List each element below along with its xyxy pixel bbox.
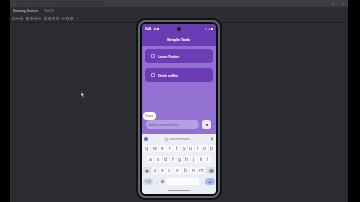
staticText: Paste: [145, 114, 154, 118]
button[interactable]: j: [191, 156, 197, 163]
button[interactable]: Device action 12: [61, 16, 65, 20]
button[interactable]: v: [174, 167, 181, 174]
button[interactable]: Learn Flutter: [145, 49, 213, 63]
button[interactable]: Backspace: [206, 167, 215, 174]
button[interactable]: Device action 2: [15, 16, 19, 20]
button[interactable]: n: [190, 167, 197, 174]
staticText: h: [185, 156, 189, 163]
button[interactable]: Pixel 8: [43, 8, 60, 14]
staticText: ,: [156, 179, 157, 184]
button[interactable]: w: [151, 145, 158, 152]
staticText: s: [157, 156, 160, 163]
staticText: Add a new todo item: [149, 123, 180, 127]
button[interactable]: a: [147, 156, 154, 163]
staticText: m: [199, 167, 204, 174]
staticText: b: [184, 167, 188, 174]
button[interactable]: f: [170, 156, 176, 163]
button[interactable]: Device action 9: [47, 16, 51, 20]
staticText: y: [183, 145, 186, 152]
button[interactable]: Device action 3: [19, 16, 23, 20]
button[interactable]: e: [159, 145, 166, 152]
button[interactable]: Device action 5: [29, 16, 33, 20]
button[interactable]: g: [177, 156, 183, 163]
staticText: w: [153, 145, 157, 152]
button[interactable]: Shift: [143, 167, 151, 174]
staticText: f: [172, 156, 174, 163]
button[interactable]: r: [167, 145, 173, 152]
staticText: Pixel 8: [44, 9, 54, 13]
staticText: o: [203, 145, 207, 152]
button[interactable]: l: [205, 156, 211, 163]
button[interactable]: Search: [331, 2, 335, 6]
button[interactable]: Add a new todo item: [146, 120, 199, 129]
staticText: d: [164, 156, 168, 163]
staticText: k: [200, 156, 203, 163]
staticText: .: [202, 179, 203, 184]
staticText: Learn Flutter: [158, 54, 180, 59]
staticText: Drink coffee: [158, 73, 178, 78]
button[interactable]: Device action 6: [33, 16, 37, 20]
button[interactable]: c: [166, 167, 173, 174]
button[interactable]: z: [152, 167, 158, 174]
staticText: Search for files and actions: [18, 2, 58, 6]
staticText: Running Devices: [13, 9, 39, 13]
staticText: ?123: [145, 180, 152, 184]
button[interactable]: y: [181, 145, 187, 152]
button[interactable]: Device action 13: [65, 16, 69, 20]
button[interactable]: Device action 4: [25, 16, 29, 20]
button[interactable]: Device action 7: [37, 16, 41, 20]
staticText: j: [193, 156, 195, 163]
staticText: u: [189, 145, 193, 152]
button[interactable]: s: [155, 156, 162, 163]
staticText: e: [161, 145, 164, 152]
button[interactable]: Enter: [205, 178, 215, 185]
button[interactable]: h: [184, 156, 190, 163]
button[interactable]: Settings: [341, 2, 345, 6]
button[interactable]: b: [182, 167, 189, 174]
staticText: a: [149, 156, 152, 163]
button[interactable]: m: [198, 167, 205, 174]
button[interactable]: Emoji: [159, 178, 165, 185]
button[interactable]: Device action 1: [11, 16, 15, 20]
button[interactable]: x: [159, 167, 165, 174]
button[interactable]: Voice input: [210, 137, 214, 141]
staticText: r: [169, 145, 172, 152]
button[interactable]: d: [163, 156, 169, 163]
button[interactable]: Device action 10: [51, 16, 55, 20]
button[interactable]: Comma: [154, 178, 158, 185]
button[interactable]: Search for files and actions: [16, 1, 104, 6]
button[interactable]: Add todo: [202, 120, 211, 129]
staticText: p: [210, 145, 214, 152]
button[interactable]: Period: [200, 178, 204, 185]
button[interactable]: p: [209, 145, 215, 152]
button[interactable]: Drink coffee: [145, 68, 213, 82]
staticText: l: [207, 156, 209, 163]
staticText: one moment...: [170, 137, 192, 141]
button[interactable]: Device action 8: [43, 16, 47, 20]
staticText: v: [176, 167, 179, 174]
staticText: x: [161, 167, 164, 174]
button[interactable]: ?123: [143, 178, 153, 185]
button[interactable]: q: [143, 145, 150, 152]
button[interactable]: i: [195, 145, 201, 152]
other: Menu: [12, 2, 15, 5]
button[interactable]: Keyboard toolbar: [144, 137, 148, 141]
button[interactable]: More: [75, 16, 79, 20]
button[interactable]: Running Devices: [12, 8, 40, 14]
button[interactable]: u: [188, 145, 194, 152]
button[interactable]: t: [174, 145, 180, 152]
staticText: Simple Todo: [167, 37, 191, 42]
staticText: g: [178, 156, 182, 163]
staticText: 9:44: [145, 27, 152, 31]
button[interactable]: Device action 11: [55, 16, 59, 20]
staticText: z: [154, 167, 157, 174]
button[interactable]: Device action 14: [69, 16, 73, 20]
staticText: c: [168, 167, 171, 174]
button[interactable]: Paste: [143, 112, 156, 120]
staticText: i: [197, 145, 199, 152]
staticText: q: [145, 145, 149, 152]
button[interactable]: k: [198, 156, 204, 163]
staticText: n: [192, 167, 196, 174]
button[interactable]: o: [202, 145, 208, 152]
